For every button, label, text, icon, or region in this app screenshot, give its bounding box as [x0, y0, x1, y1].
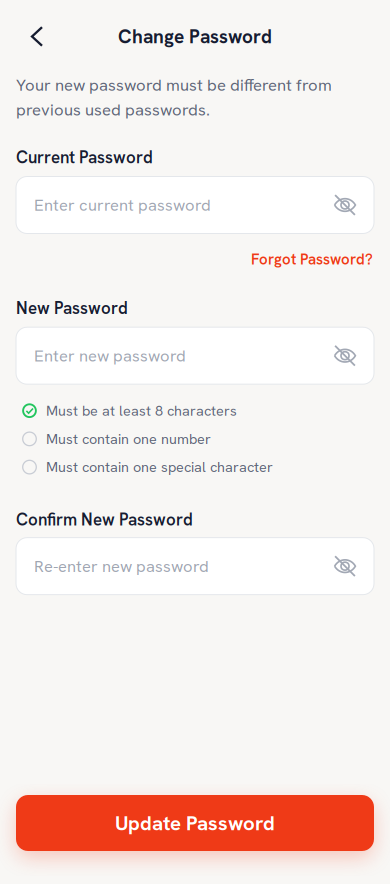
staticText: Current Password	[16, 146, 153, 168]
staticText: Must be at least 8 characters	[46, 401, 237, 420]
staticText: Update Password	[115, 810, 275, 836]
staticText: Re-enter new password	[34, 555, 209, 577]
button[interactable]: Show password	[326, 544, 364, 588]
staticText: Your new password must be different from…	[16, 74, 332, 120]
button[interactable]: Forgot Password?	[251, 249, 373, 269]
staticText: Must contain one number	[46, 429, 211, 448]
staticText: Confirm New Password	[16, 509, 193, 531]
staticText: New Password	[16, 297, 128, 319]
button[interactable]: Update Password	[16, 795, 374, 851]
staticText: Must contain one special character	[46, 458, 273, 476]
staticText: Enter current password	[34, 194, 211, 216]
button[interactable]: Show password	[326, 334, 364, 378]
button[interactable]: Back	[17, 14, 57, 58]
staticText: Forgot Password?	[251, 249, 373, 269]
staticText: Change Password	[118, 24, 272, 49]
staticText: Enter new password	[34, 345, 186, 366]
button[interactable]: Show password	[326, 183, 364, 227]
